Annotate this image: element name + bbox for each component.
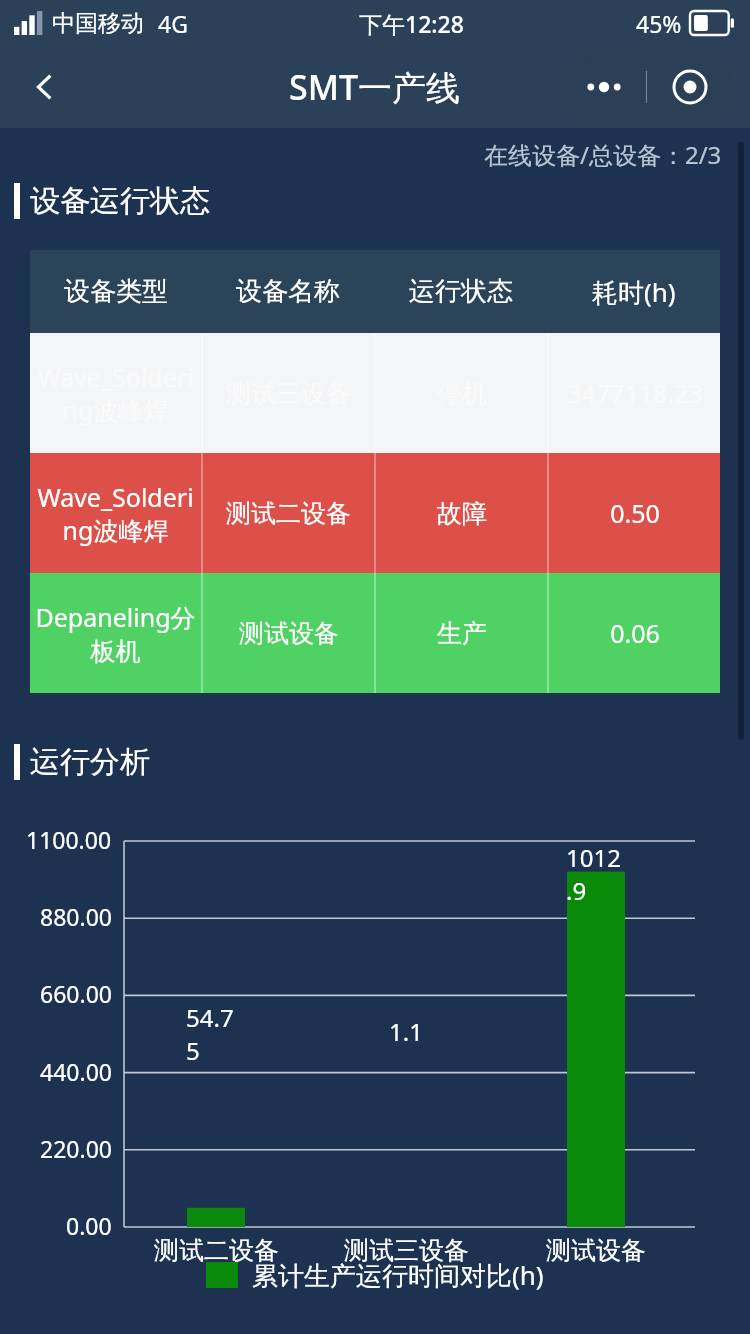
button[interactable]: 测试设备 xyxy=(203,573,374,693)
staticText: 0.06 xyxy=(610,616,660,650)
staticText: SMT一产线 xyxy=(289,64,461,110)
staticText: 45% xyxy=(636,8,682,39)
staticText: 测试二设备 xyxy=(226,498,351,529)
button[interactable]: More xyxy=(561,56,733,118)
staticText: 中国移动 xyxy=(52,9,144,38)
staticText: 生产 xyxy=(437,618,487,649)
button[interactable]: Target xyxy=(647,56,733,118)
staticText: 1012.9 xyxy=(566,841,626,907)
staticText: 运行分析 xyxy=(30,743,150,781)
staticText: 测试设备 xyxy=(239,618,339,649)
button[interactable]: 0.50 xyxy=(549,453,720,573)
staticText: 0.50 xyxy=(610,496,660,530)
staticText: 设备类型 xyxy=(64,275,168,308)
button[interactable]: More xyxy=(561,56,646,118)
staticText: 880.00 xyxy=(40,901,112,932)
staticText: 54.75 xyxy=(186,1001,246,1067)
staticText: Wave_Soldering波峰焊 xyxy=(32,480,199,547)
button[interactable]: Wave_Soldering波峰焊 xyxy=(30,453,201,573)
staticText: 1.1 xyxy=(389,1015,423,1048)
button[interactable]: Depaneling分板机 xyxy=(30,573,201,693)
staticText: 累计生产运行时间对比(h) xyxy=(252,1257,544,1293)
button[interactable]: 测试二设备 xyxy=(203,453,374,573)
button[interactable]: 生产 xyxy=(376,573,547,693)
staticText: 4G xyxy=(158,8,188,39)
staticText: 220.00 xyxy=(40,1133,112,1164)
staticText: Depaneling分板机 xyxy=(32,600,199,667)
button[interactable]: Back xyxy=(18,60,72,114)
button[interactable]: 0.06 xyxy=(549,573,720,693)
staticText: 1100.00 xyxy=(26,824,112,855)
button[interactable]: 故障 xyxy=(376,453,547,573)
staticText: 故障 xyxy=(437,498,487,529)
staticText: 设备名称 xyxy=(236,275,340,308)
staticText: 下午12:28 xyxy=(359,8,464,39)
staticText: 测试三设备 xyxy=(344,1235,469,1266)
staticText: 运行状态 xyxy=(409,275,513,308)
staticText: 测试二设备 xyxy=(154,1235,279,1266)
staticText: 测试设备 xyxy=(546,1235,646,1266)
staticText: 0.00 xyxy=(66,1210,112,1241)
staticText: 在线设备/总设备：2/3 xyxy=(484,138,722,171)
staticText: 耗时(h) xyxy=(592,274,676,310)
staticText: 设备运行状态 xyxy=(30,182,210,220)
staticText: 660.00 xyxy=(40,978,112,1009)
staticText: 440.00 xyxy=(40,1056,112,1087)
